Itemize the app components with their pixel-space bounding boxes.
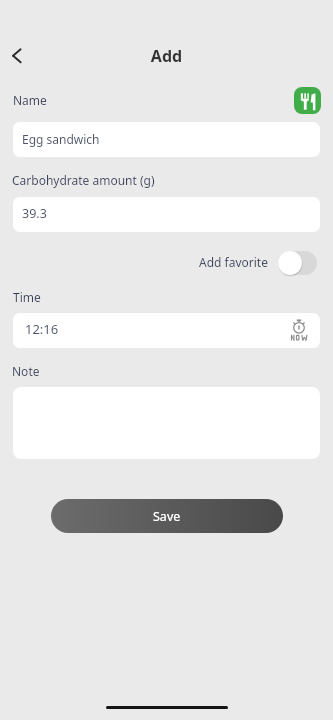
staticText: Name (13, 92, 47, 108)
button[interactable]: Add favorite (192, 246, 321, 279)
staticText: Egg sandwich (22, 131, 100, 147)
button[interactable]: Set current time (285, 316, 313, 346)
staticText: Add favorite (199, 254, 268, 270)
button[interactable]: Egg sandwich (13, 122, 320, 157)
staticText: Time (13, 289, 41, 305)
button[interactable]: Back (0, 39, 34, 73)
button[interactable]: Food database (294, 87, 321, 114)
button[interactable]: 39.3 (13, 197, 320, 232)
button[interactable]: Save (51, 499, 283, 533)
staticText: Carbohydrate amount (g) (12, 172, 155, 188)
staticText: 39.3 (22, 205, 47, 222)
button[interactable]: 12:16 (13, 313, 320, 348)
staticText: Save (153, 508, 181, 525)
staticText: Note (12, 363, 40, 379)
staticText: 12:16 (25, 320, 59, 338)
staticText: Add (0, 45, 333, 67)
